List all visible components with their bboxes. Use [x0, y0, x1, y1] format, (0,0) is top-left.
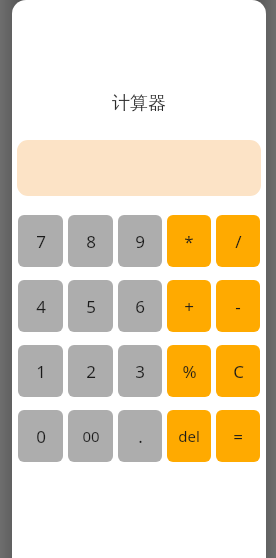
button[interactable]: = [216, 410, 260, 462]
button[interactable]: . [118, 410, 162, 462]
staticText: - [235, 295, 241, 318]
button[interactable]: / [216, 215, 260, 267]
staticText: % [182, 360, 197, 383]
staticText: 1 [36, 360, 46, 383]
staticText: 3 [135, 360, 145, 383]
button[interactable]: - [216, 280, 260, 332]
button[interactable]: 3 [118, 345, 162, 397]
staticText: = [233, 425, 243, 448]
staticText: 8 [86, 230, 96, 253]
staticText: 2 [86, 360, 96, 383]
button[interactable]: 2 [68, 345, 113, 397]
staticText: 5 [86, 295, 96, 318]
button[interactable]: 00 [68, 410, 113, 462]
staticText: . [138, 425, 143, 448]
staticText: del [178, 426, 200, 446]
staticText: + [184, 295, 194, 318]
button[interactable]: 4 [18, 280, 63, 332]
staticText: 00 [82, 426, 100, 446]
button[interactable]: 1 [18, 345, 63, 397]
button[interactable]: 0 [18, 410, 63, 462]
staticText: * [184, 230, 194, 253]
button[interactable]: * [167, 215, 211, 267]
staticText: 6 [135, 295, 145, 318]
button[interactable]: 8 [68, 215, 113, 267]
button[interactable]: del [167, 410, 211, 462]
button[interactable]: + [167, 280, 211, 332]
button[interactable]: 7 [18, 215, 63, 267]
staticText: C [233, 360, 244, 383]
staticText: 计算器 [12, 92, 266, 115]
staticText: / [235, 230, 242, 253]
button[interactable]: C [216, 345, 260, 397]
button[interactable]: % [167, 345, 211, 397]
staticText: 9 [135, 230, 145, 253]
staticText: 7 [36, 230, 46, 253]
button[interactable]: 6 [118, 280, 162, 332]
button[interactable]: 5 [68, 280, 113, 332]
staticText: 0 [36, 425, 46, 448]
button[interactable]: 9 [118, 215, 162, 267]
staticText: 4 [36, 295, 46, 318]
button[interactable] [17, 140, 261, 196]
